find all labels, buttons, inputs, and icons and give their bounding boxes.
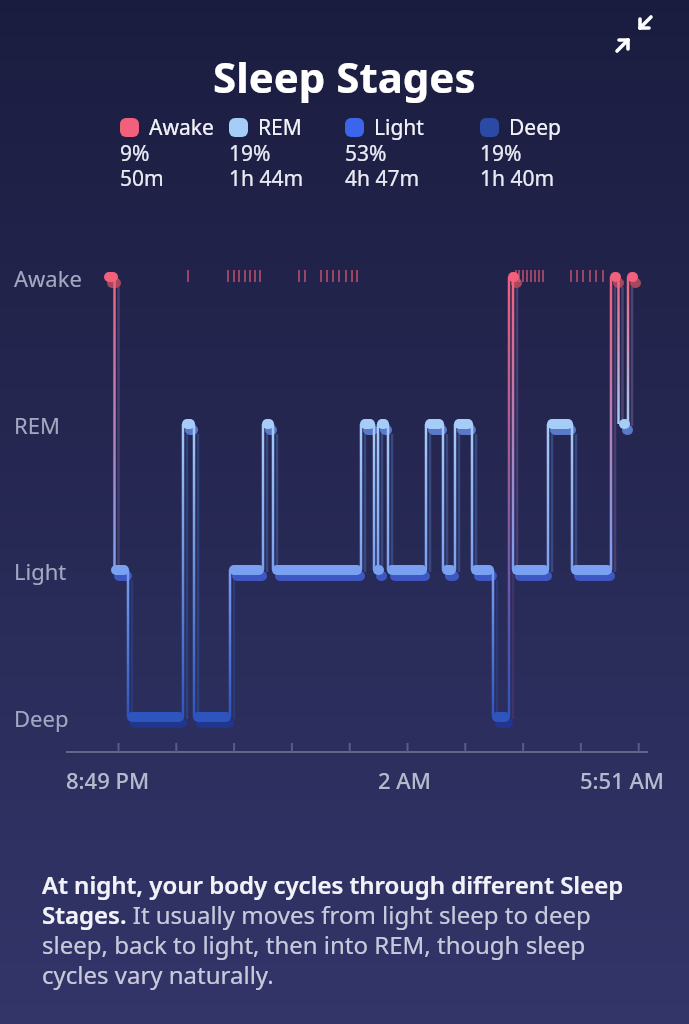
staticText: 8:49 PM — [66, 765, 150, 795]
button[interactable] — [612, 10, 656, 54]
staticText: Light — [374, 113, 424, 142]
staticText: 5:51 AM — [580, 765, 665, 795]
staticText: Sleep Stages — [213, 48, 476, 105]
staticText: 1h 40m — [480, 164, 555, 193]
staticText: 19% — [229, 139, 271, 168]
staticText: REM — [14, 410, 60, 440]
staticText: 53% — [345, 139, 387, 168]
staticText: Deep — [14, 703, 69, 733]
staticText: Light — [14, 556, 67, 586]
staticText: 19% — [480, 139, 522, 168]
staticText: At night, your body cycles through diffe… — [42, 868, 627, 991]
staticText: Awake — [149, 113, 214, 142]
staticText: 50m — [120, 164, 164, 193]
staticText: 2 AM — [378, 765, 431, 795]
staticText: 9% — [120, 139, 150, 168]
staticText: Awake — [14, 263, 82, 293]
staticText: REM — [258, 113, 302, 142]
staticText: 4h 47m — [345, 164, 420, 193]
staticText: 1h 44m — [229, 164, 304, 193]
staticText: Deep — [509, 113, 561, 142]
